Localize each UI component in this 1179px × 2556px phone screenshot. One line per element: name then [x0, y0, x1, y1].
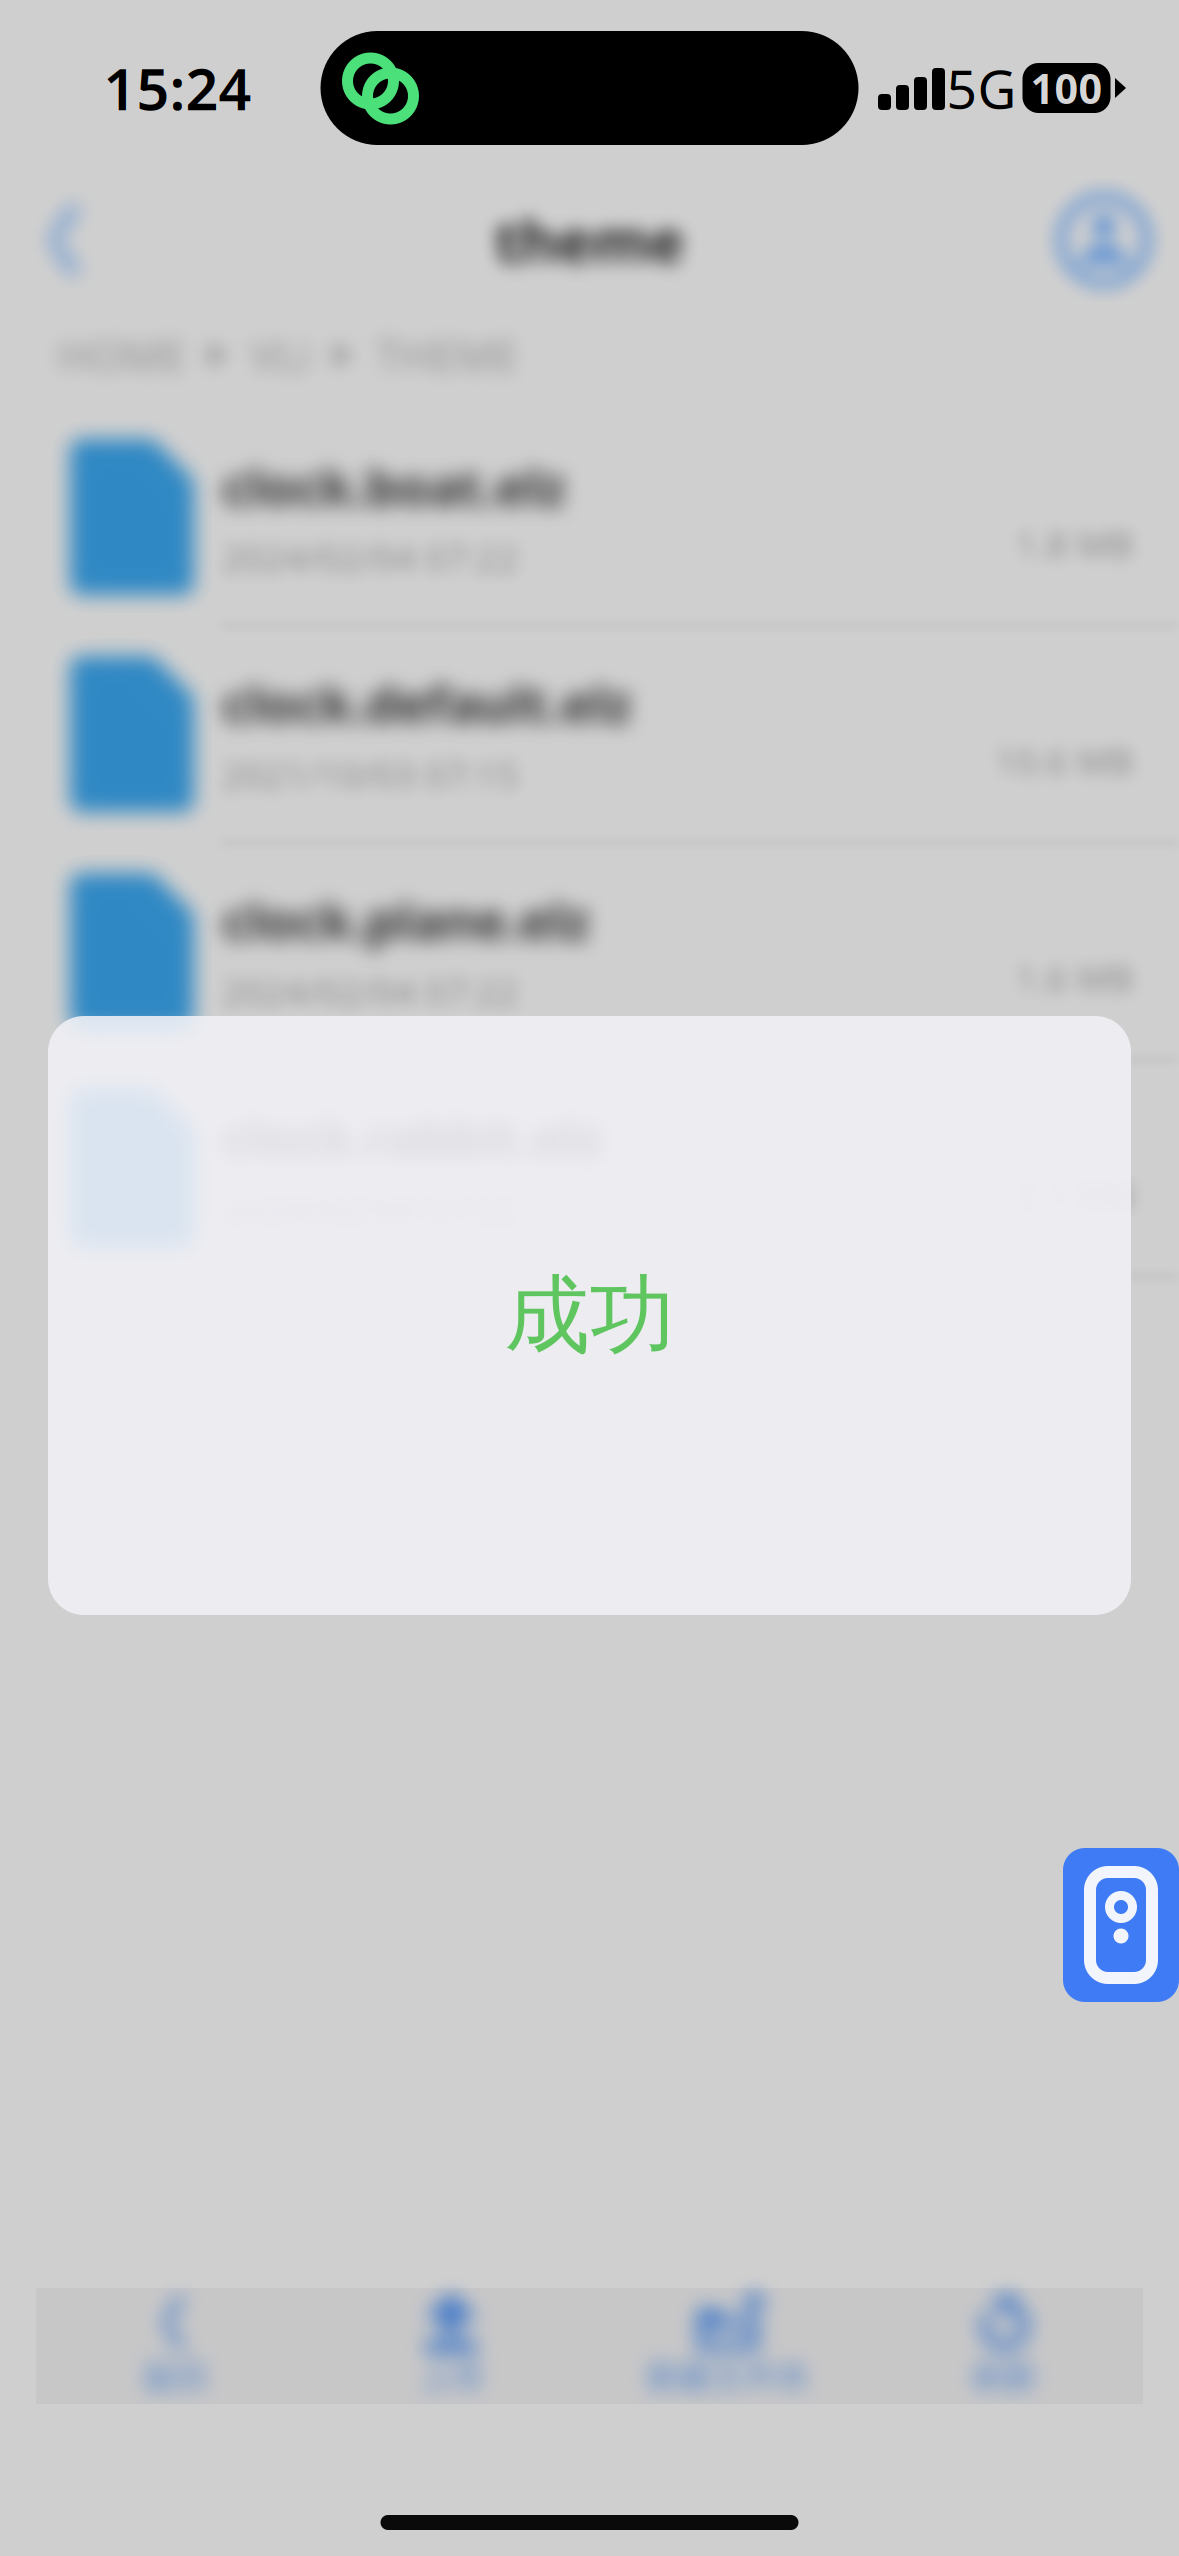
button[interactable]: clock.plane.elz — [0, 844, 1179, 1061]
button[interactable]: 刷新 — [866, 2284, 1143, 2407]
staticText: 100 — [1030, 61, 1102, 115]
staticText: 15:24 — [103, 50, 251, 126]
button[interactable]: Account — [1029, 180, 1179, 300]
button[interactable]: clock.rabbit.elz — [0, 1061, 1179, 1278]
button[interactable]: 上传 — [313, 2284, 590, 2407]
button[interactable]: Back — [0, 180, 130, 300]
button[interactable]: clock.boat.elz — [0, 410, 1179, 627]
button[interactable]: 返回 — [36, 2284, 313, 2407]
button[interactable]: Remote control — [1063, 1848, 1179, 2002]
button[interactable]: 新建文件夹 — [589, 2284, 866, 2407]
staticText: 5G — [946, 53, 1016, 123]
staticText: 成功 — [504, 1263, 674, 1368]
button[interactable]: clock.default.elz — [0, 627, 1179, 844]
